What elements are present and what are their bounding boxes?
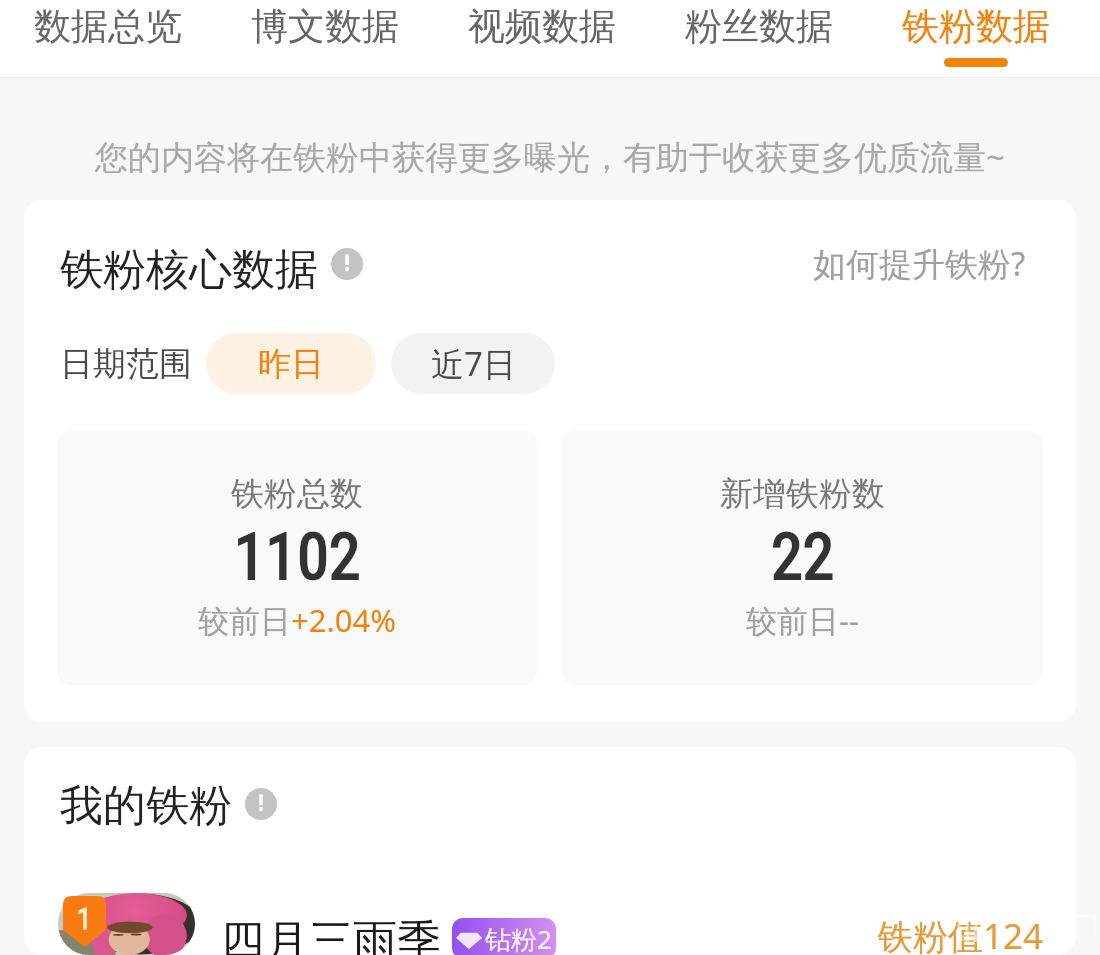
button[interactable]: About core iron-fan data [331,248,363,280]
staticText: 粉丝数据 [685,3,833,50]
staticText: 1102 [234,520,361,595]
staticText: 昨日 [258,343,324,385]
staticText: 1 [77,902,92,936]
staticText: 铁粉核心数据 [60,243,318,297]
button[interactable]: 粉丝数据 [650,0,867,78]
button[interactable]: 如何提升铁粉? [827,248,1040,293]
button[interactable]: 视频数据 [433,0,650,78]
button[interactable]: 铁粉总数 [57,431,537,685]
staticText: 您的内容将在铁粉中获得更多曝光，有助于收获更多优质流量~ [95,134,1005,179]
staticText: 日期范围 [60,343,192,385]
button[interactable]: 昨日 [206,333,376,394]
staticText: 近7日 [431,341,516,386]
staticText: 博文数据 [251,3,399,50]
staticText: 数据总览 [34,3,182,50]
staticText: 22 [771,520,835,595]
staticText: 如何提升铁粉? [813,241,1026,286]
staticText: 较前日-- [746,599,859,641]
staticText: 铁粉总数 [231,473,363,515]
staticText: 新增铁粉数 [720,473,885,515]
staticText: 钻粉2 [485,921,552,955]
staticText: 较前日+2.04% [198,599,396,641]
button[interactable]: 新增铁粉数 [562,431,1043,685]
button[interactable]: About my iron fans [245,788,277,820]
staticText: 铁粉数据 [902,3,1050,50]
button[interactable]: 数据总览 [0,0,216,78]
button[interactable]: 博文数据 [216,0,433,78]
staticText: 我的铁粉 [60,779,232,833]
staticText: 视频数据 [468,3,616,50]
staticText: 四月三雨季 [221,914,441,955]
staticText: 铁粉值124 [878,912,1044,955]
button[interactable]: 近7日 [391,333,555,394]
button[interactable]: 铁粉数据 [867,0,1084,78]
button[interactable]: 1 [24,893,1076,955]
